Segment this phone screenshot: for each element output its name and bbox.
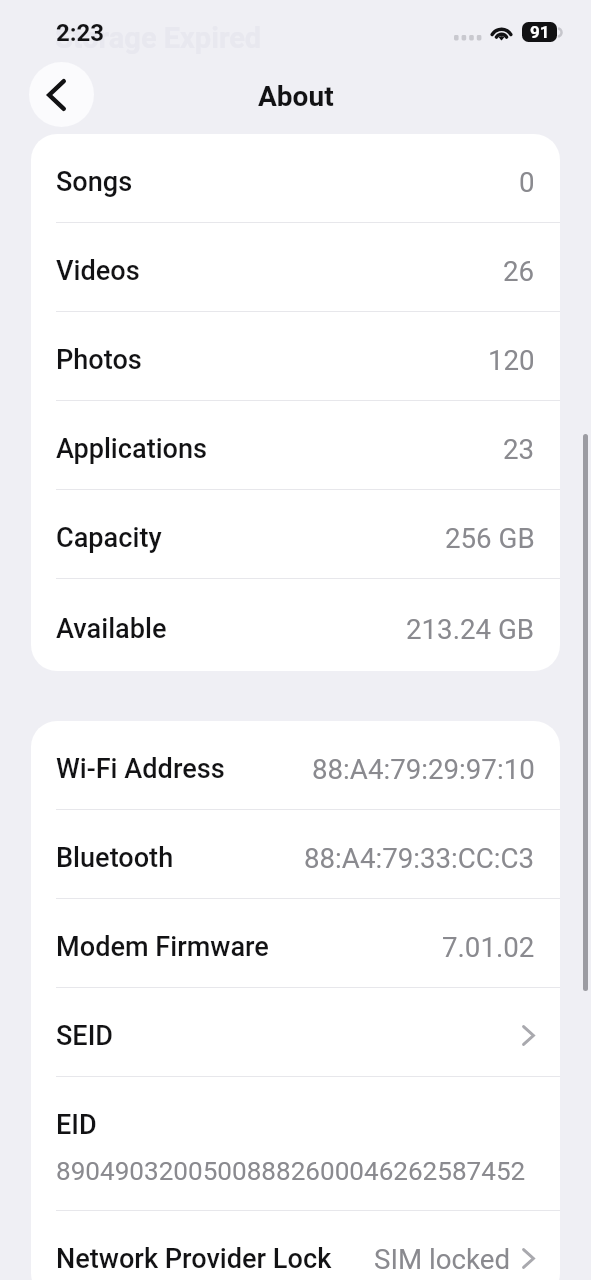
button[interactable]: EID (31, 1077, 560, 1210)
staticText: Modem Firmware (56, 931, 269, 963)
button[interactable]: Back (29, 62, 94, 127)
staticText: 89049032005008882600046262587452 (56, 1156, 526, 1187)
staticText: 0 (519, 166, 535, 198)
staticText: 256 GB (445, 522, 535, 554)
staticText: 88:A4:79:33:CC:C3 (304, 842, 535, 874)
staticText: Network Provider Lock (56, 1243, 332, 1275)
button[interactable]: Applications (31, 401, 560, 489)
staticText: SEID (56, 1020, 114, 1052)
staticText: Songs (56, 166, 133, 198)
staticText: 2:23 (56, 19, 105, 47)
staticText: EID (56, 1109, 97, 1141)
staticText: 120 (488, 344, 535, 376)
staticText: Wi-Fi Address (56, 753, 225, 785)
staticText: 23 (503, 433, 535, 465)
staticText: Applications (56, 433, 208, 465)
staticText: 7.01.02 (442, 931, 535, 963)
button[interactable]: Bluetooth (31, 810, 560, 898)
staticText: About (258, 80, 334, 113)
staticText: 91 (530, 22, 550, 42)
staticText: Storage Expired (55, 21, 262, 55)
staticText: Photos (56, 344, 142, 376)
button[interactable]: Capacity (31, 490, 560, 578)
button[interactable]: Available (31, 579, 560, 671)
button[interactable]: Photos (31, 312, 560, 400)
staticText: Available (56, 613, 167, 645)
button[interactable]: Videos (31, 223, 560, 311)
button[interactable]: SEID (31, 988, 560, 1076)
staticText: 26 (503, 255, 535, 287)
staticText: 213.24 GB (406, 613, 535, 645)
staticText: 88:A4:79:29:97:10 (312, 753, 535, 785)
button[interactable]: Modem Firmware (31, 899, 560, 987)
button[interactable]: Network Provider Lock (31, 1211, 560, 1280)
button[interactable]: Songs (31, 134, 560, 222)
staticText: Capacity (56, 522, 162, 554)
staticText: Videos (56, 255, 140, 287)
staticText: Bluetooth (56, 842, 174, 874)
staticText: SIM locked (374, 1243, 511, 1275)
button[interactable]: Wi-Fi Address (31, 721, 560, 809)
